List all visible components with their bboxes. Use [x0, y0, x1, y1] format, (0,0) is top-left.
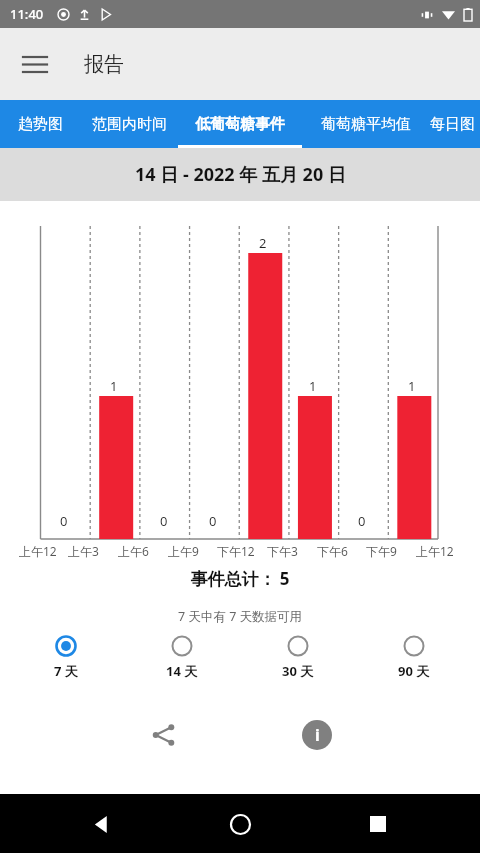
button[interactable]: 葡萄糖平均值: [302, 100, 430, 148]
button[interactable]: Open navigation menu: [12, 41, 58, 87]
button[interactable]: 每日图: [430, 100, 480, 148]
staticText: 报告: [84, 52, 124, 77]
button[interactable]: 30 天: [248, 633, 348, 682]
staticText: 下午12: [217, 543, 255, 559]
button[interactable]: Recent apps: [356, 802, 400, 846]
staticText: 0: [160, 512, 168, 530]
staticText: 14 天: [166, 662, 198, 680]
button[interactable]: Information: [294, 712, 340, 758]
button[interactable]: 90 天: [364, 633, 464, 682]
staticText: 上午12: [19, 543, 57, 559]
staticText: 1: [110, 377, 118, 395]
staticText: 1: [408, 377, 416, 395]
staticText: 趋势图: [18, 115, 63, 134]
staticText: 下午9: [366, 543, 397, 559]
staticText: 0: [358, 512, 366, 530]
button[interactable]: 范围内时间: [80, 100, 178, 148]
staticText: 90 天: [398, 662, 430, 680]
button[interactable]: 低葡萄糖事件: [178, 100, 302, 148]
staticText: 下午3: [267, 543, 298, 559]
staticText: 0: [60, 512, 68, 530]
staticText: 1: [309, 377, 317, 395]
staticText: i: [315, 724, 320, 746]
button[interactable]: 14 天: [132, 633, 232, 682]
staticText: 0: [209, 512, 217, 530]
staticText: 低葡萄糖事件: [195, 115, 285, 134]
staticText: 上午9: [168, 543, 199, 559]
staticText: 下午6: [317, 543, 348, 559]
button[interactable]: Back: [80, 802, 124, 846]
staticText: 上午12: [416, 543, 454, 559]
button[interactable]: 趋势图: [0, 100, 80, 148]
staticText: 14 日 - 2022 年 五月 20 日: [135, 162, 346, 187]
staticText: 上午6: [118, 543, 149, 559]
staticText: 事件总计： 5: [0, 567, 480, 590]
staticText: 范围内时间: [92, 115, 167, 134]
button[interactable]: 7 天: [16, 633, 116, 682]
button[interactable]: Home: [218, 802, 262, 846]
button[interactable]: Share: [140, 712, 186, 758]
staticText: 上午3: [68, 543, 99, 559]
staticText: 7 天中有 7 天数据可用: [0, 608, 480, 625]
staticText: 每日图: [430, 115, 475, 134]
staticText: 2: [259, 234, 267, 252]
staticText: 11:40: [10, 5, 44, 23]
staticText: 7 天: [54, 662, 78, 680]
staticText: 30 天: [282, 662, 314, 680]
staticText: 葡萄糖平均值: [321, 115, 411, 134]
